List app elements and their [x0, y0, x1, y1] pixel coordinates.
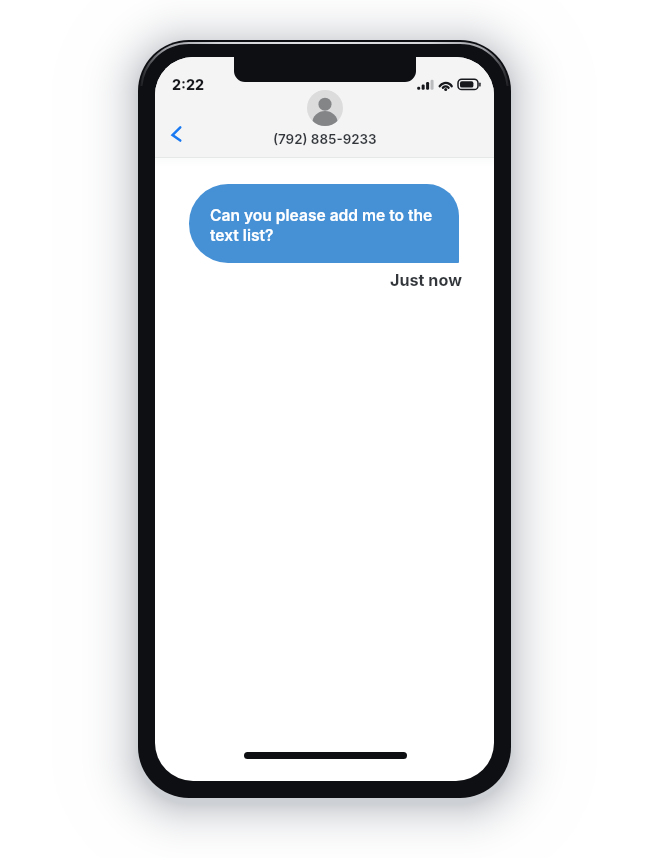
staticText: (792) 885-9233 [273, 131, 377, 147]
staticText: Can you please add me to the text list? [210, 206, 441, 244]
staticText: 2:22 [172, 76, 205, 93]
button[interactable]: Back [159, 117, 195, 153]
button[interactable]: Can you please add me to the text list? [189, 184, 459, 263]
button[interactable]: (792) 885-9233 [250, 57, 400, 147]
staticText: Just now [390, 270, 462, 290]
